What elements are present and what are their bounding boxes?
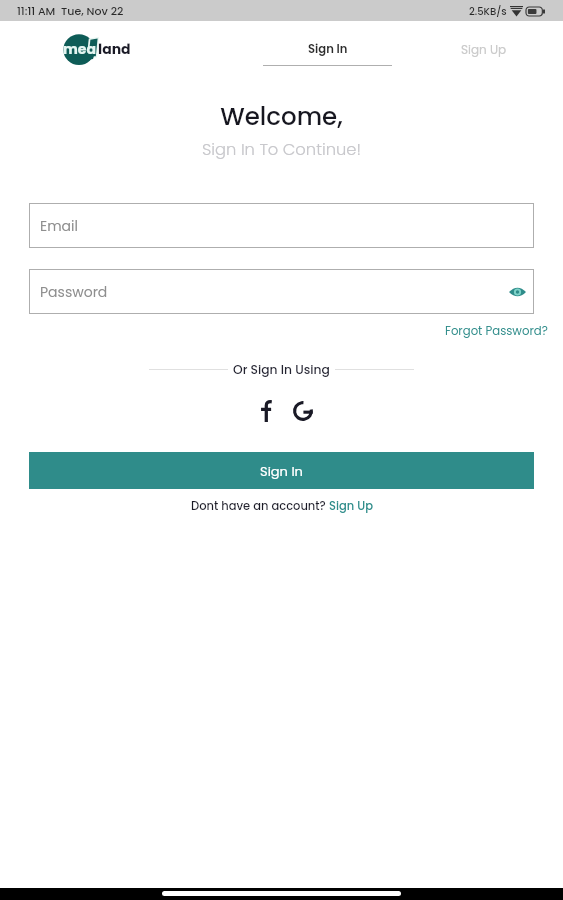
staticText: 11:11 AM Tue, Nov 22 [17, 3, 124, 18]
button[interactable]: Sign in with Facebook [252, 397, 280, 425]
staticText: Or Sign In Using [233, 361, 330, 378]
staticText: Email [40, 216, 78, 236]
button[interactable]: Sign Up [329, 498, 373, 514]
staticText: Welcome, [0, 99, 563, 133]
button[interactable]: Forgot Password? [442, 322, 548, 340]
staticText: Sign In [308, 41, 348, 57]
staticText: Sign In To Continue! [0, 138, 563, 161]
staticText: land [98, 39, 131, 59]
staticText: Sign Up [461, 41, 507, 58]
staticText: Sign In [260, 462, 303, 480]
button[interactable]: Show password [506, 281, 528, 303]
button[interactable]: Email [29, 203, 534, 248]
staticText: Password [40, 282, 108, 302]
button[interactable]: Sign in with Google [289, 397, 317, 425]
staticText: Dont have an account? [191, 498, 329, 514]
staticText: Forgot Password? [445, 323, 548, 339]
button[interactable]: Password [29, 269, 534, 314]
button[interactable]: Sign Up [444, 32, 524, 64]
button[interactable]: Sign In [263, 32, 392, 72]
button[interactable]: Sign In [29, 452, 534, 489]
staticText: 2.5KB/s [469, 4, 507, 18]
staticText: mea [63, 39, 96, 59]
